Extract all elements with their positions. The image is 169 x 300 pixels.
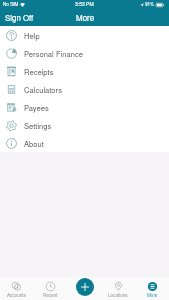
button[interactable]: Personal Finance	[0, 44, 169, 62]
staticText: About	[24, 138, 44, 149]
staticText: Calculators	[24, 84, 62, 95]
button[interactable]: More	[135, 277, 169, 300]
button[interactable]: Accounts	[0, 277, 33, 300]
staticText: More	[76, 12, 95, 23]
staticText: Sign Off	[5, 12, 34, 23]
staticText: More	[147, 292, 158, 299]
button[interactable]: Locations	[101, 277, 135, 300]
button[interactable]: Settings	[0, 116, 169, 134]
staticText: Recent	[43, 292, 58, 299]
staticText: Help	[24, 30, 40, 41]
button[interactable]: Recent	[33, 277, 67, 300]
button[interactable]: Add	[76, 278, 94, 296]
staticText: 3:53 PM	[75, 0, 94, 7]
staticText: Receipts	[24, 66, 54, 77]
button[interactable]: Payees	[0, 98, 169, 116]
button[interactable]: Calculators	[0, 80, 169, 98]
staticText: 91%	[145, 1, 155, 8]
button[interactable]: Help	[0, 26, 169, 44]
button[interactable]: About	[0, 134, 169, 152]
button[interactable]: Sign Off	[0, 10, 39, 25]
staticText: No SIM	[3, 1, 19, 8]
staticText: Accounts	[7, 292, 26, 299]
staticText: Settings	[24, 120, 52, 131]
staticText: Locations	[108, 292, 128, 299]
staticText: Personal Finance	[24, 48, 83, 59]
staticText: Payees	[24, 102, 49, 113]
button[interactable]: Receipts	[0, 62, 169, 80]
